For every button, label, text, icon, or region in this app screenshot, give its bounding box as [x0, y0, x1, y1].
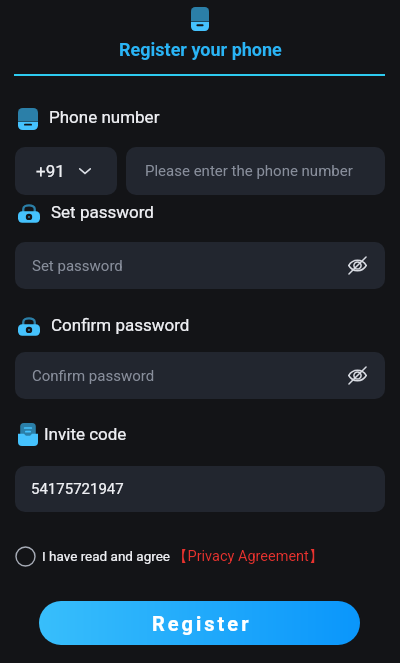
button[interactable]: +91 [15, 147, 117, 195]
button[interactable]: Toggle password visibility [348, 256, 367, 275]
button[interactable]: Confirm password [15, 352, 385, 399]
staticText: Register your phone [119, 39, 282, 60]
staticText: Register [152, 612, 252, 635]
staticText: Invite code [44, 424, 127, 444]
staticText: Please enter the phone number [145, 162, 353, 180]
staticText: 54175721947 [31, 480, 124, 498]
button[interactable]: Set password [15, 242, 385, 289]
staticText: +91 [36, 161, 65, 181]
button[interactable]: Please enter the phone number [126, 147, 385, 195]
staticText: Set password [51, 202, 154, 222]
staticText: I have read and agree [42, 548, 171, 564]
button[interactable]: 54175721947 [15, 466, 385, 512]
staticText: Confirm password [32, 367, 155, 385]
staticText: Phone number [49, 107, 160, 127]
button[interactable]: Register [39, 601, 360, 645]
button[interactable]: Agree to privacy agreement [15, 546, 36, 567]
button[interactable]: 【Privacy Agreement】 [173, 547, 324, 565]
button[interactable]: Toggle password visibility [348, 366, 367, 385]
staticText: Confirm password [51, 315, 190, 335]
staticText: Set password [32, 257, 123, 275]
staticText: 【Privacy Agreement】 [173, 547, 324, 565]
